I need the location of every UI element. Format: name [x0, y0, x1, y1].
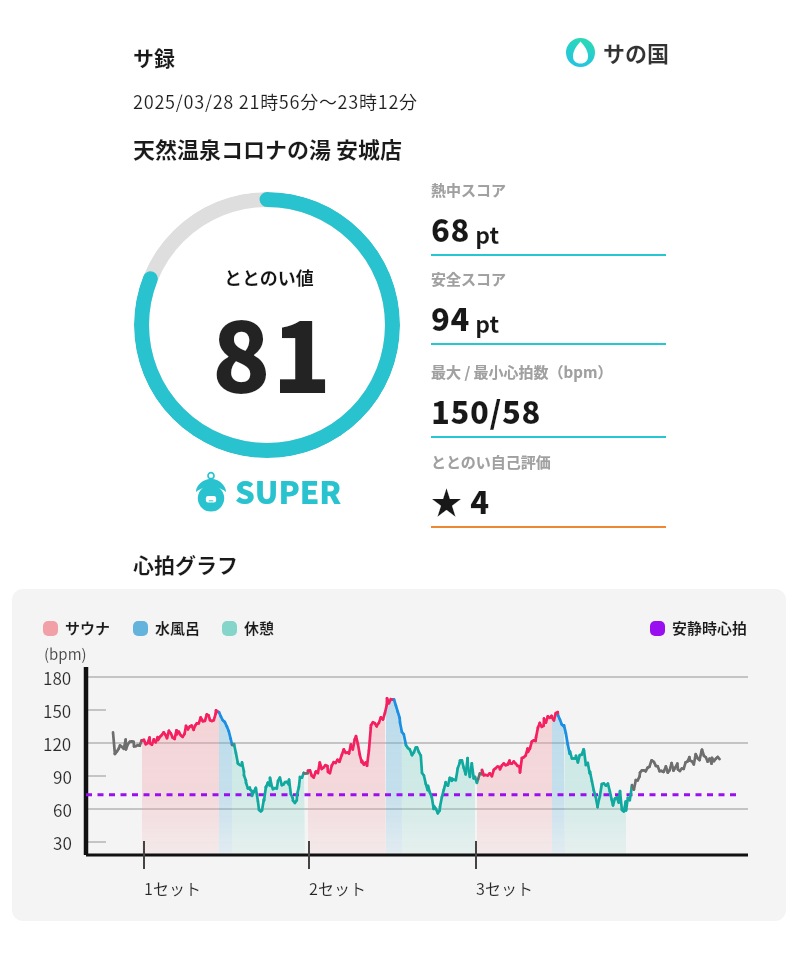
staticText: (bpm) [44, 643, 87, 665]
staticText: 68 [431, 206, 470, 251]
staticText: サの国 [603, 36, 670, 68]
staticText: 30 [53, 830, 72, 855]
staticText: 81 [212, 282, 333, 421]
button[interactable]: ととのい自己評価 [431, 451, 666, 528]
button[interactable]: 安全スコア [431, 268, 666, 345]
staticText: 94 [431, 295, 470, 340]
button[interactable]: サの国 logo [566, 36, 670, 68]
button[interactable]: SUPER rank [196, 468, 342, 513]
staticText: 150 [43, 698, 72, 723]
staticText: 120 [43, 731, 72, 756]
staticText: 1セット [144, 876, 201, 899]
staticText: 休憩 [244, 617, 275, 639]
staticText: 水風呂 [155, 617, 201, 639]
staticText: 最大 / 最小心拍数（bpm） [431, 361, 613, 383]
button[interactable]: 最大 / 最小心拍数（bpm） [431, 361, 666, 438]
staticText: 2セット [309, 876, 366, 899]
staticText: 安静時心拍 [672, 617, 748, 639]
button[interactable]: サウナ [12, 589, 786, 921]
staticText: 安全スコア [431, 268, 507, 290]
staticText: 90 [53, 764, 72, 789]
staticText: 3セット [476, 876, 533, 899]
staticText: 180 [43, 665, 72, 690]
staticText: pt [470, 306, 500, 339]
staticText: サウナ [65, 617, 111, 639]
staticText: 2025/03/28 21時56分〜23時12分 [133, 88, 418, 114]
staticText: SUPER [235, 468, 342, 513]
staticText: 天然温泉コロナの湯 安城店 [133, 132, 402, 164]
staticText: ととのい自己評価 [431, 451, 551, 473]
staticText: 心拍グラフ [133, 549, 238, 579]
staticText: ととのい値 [224, 264, 314, 290]
button[interactable]: 熱中スコア [431, 179, 666, 256]
staticText: 熱中スコア [431, 179, 507, 201]
staticText: 60 [53, 797, 72, 822]
button[interactable]: ととのい値 81 [134, 192, 400, 458]
staticText: ★ 4 [431, 478, 490, 523]
staticText: サ録 [133, 42, 175, 72]
staticText: 150/58 [431, 388, 541, 433]
staticText: pt [470, 217, 500, 250]
